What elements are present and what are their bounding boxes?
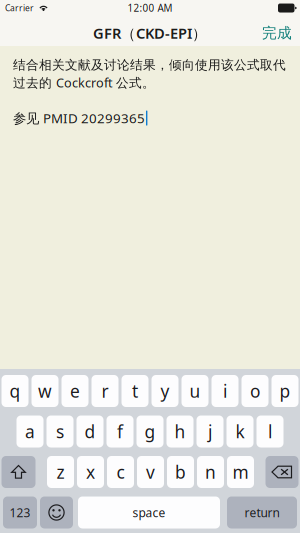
staticText: h bbox=[174, 420, 185, 443]
button[interactable]: 完成 bbox=[254, 18, 300, 48]
button[interactable]: a bbox=[16, 415, 43, 447]
button[interactable]: o bbox=[241, 375, 268, 407]
staticText: 123 bbox=[9, 504, 30, 520]
staticText: 参见 PMID 20299365 bbox=[13, 109, 145, 127]
button[interactable]: s bbox=[46, 415, 73, 447]
button[interactable]: Shift bbox=[1, 456, 35, 488]
button[interactable]: d bbox=[76, 415, 103, 447]
staticText: j bbox=[208, 420, 212, 443]
button[interactable]: j bbox=[196, 415, 223, 447]
staticText: x bbox=[86, 460, 95, 483]
staticText: l bbox=[268, 420, 272, 443]
staticText: return bbox=[244, 504, 279, 520]
button[interactable]: space bbox=[78, 496, 220, 528]
button[interactable]: Delete bbox=[265, 456, 298, 488]
staticText: r bbox=[101, 379, 108, 402]
staticText: GFR（CKD-EPI） bbox=[93, 23, 207, 43]
button[interactable]: p bbox=[271, 375, 298, 407]
button[interactable]: c bbox=[107, 456, 134, 488]
staticText: y bbox=[160, 379, 169, 402]
staticText: i bbox=[223, 379, 227, 402]
staticText: n bbox=[205, 460, 216, 483]
staticText: w bbox=[38, 379, 52, 402]
staticText: d bbox=[84, 420, 95, 443]
button[interactable]: return bbox=[227, 496, 297, 528]
button[interactable]: y bbox=[151, 375, 178, 407]
staticText: t bbox=[132, 379, 138, 402]
staticText: e bbox=[70, 379, 80, 402]
staticText: s bbox=[56, 420, 64, 443]
staticText: f bbox=[117, 420, 123, 443]
button[interactable]: r bbox=[91, 375, 118, 407]
staticText: m bbox=[232, 460, 248, 483]
staticText: q bbox=[9, 379, 20, 402]
button[interactable]: l bbox=[256, 415, 283, 447]
staticText: g bbox=[144, 420, 155, 443]
button[interactable]: 123 bbox=[3, 496, 37, 528]
button[interactable]: f bbox=[106, 415, 133, 447]
staticText: b bbox=[175, 460, 186, 483]
button[interactable]: Emoji keyboard bbox=[40, 496, 73, 528]
button[interactable]: e bbox=[61, 375, 88, 407]
button[interactable]: u bbox=[181, 375, 208, 407]
button[interactable]: w bbox=[31, 375, 58, 407]
button[interactable]: z bbox=[47, 456, 74, 488]
staticText: space bbox=[132, 504, 165, 520]
button[interactable]: g bbox=[136, 415, 163, 447]
button[interactable]: q bbox=[1, 375, 28, 407]
staticText: 完成 bbox=[262, 24, 292, 42]
staticText: o bbox=[250, 379, 260, 402]
button[interactable]: m bbox=[227, 456, 254, 488]
button[interactable]: h bbox=[166, 415, 193, 447]
button[interactable]: i bbox=[211, 375, 238, 407]
staticText: 12:00 AM bbox=[127, 1, 172, 15]
staticText: p bbox=[279, 379, 290, 402]
button[interactable]: t bbox=[121, 375, 148, 407]
staticText: v bbox=[146, 460, 155, 483]
button[interactable]: k bbox=[226, 415, 253, 447]
staticText: k bbox=[235, 420, 244, 443]
staticText: c bbox=[116, 460, 124, 483]
staticText: u bbox=[189, 379, 200, 402]
button[interactable]: x bbox=[77, 456, 104, 488]
button[interactable]: v bbox=[137, 456, 164, 488]
staticText: 结合相关文献及讨论结果，倾向使用该公式取代过去的 Cockcroft 公式。 bbox=[13, 57, 286, 91]
button[interactable]: b bbox=[167, 456, 194, 488]
staticText: z bbox=[56, 460, 64, 483]
staticText: a bbox=[25, 420, 35, 443]
button[interactable]: n bbox=[197, 456, 224, 488]
staticText: Carrier bbox=[5, 2, 34, 14]
